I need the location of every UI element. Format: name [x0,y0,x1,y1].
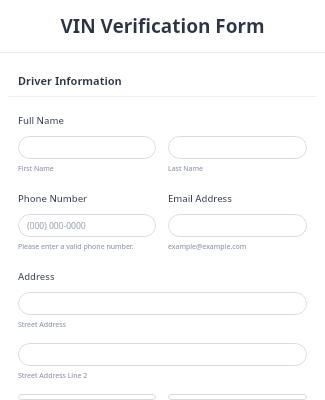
staticText: Driver Information [18,73,122,88]
button[interactable] [18,292,307,315]
staticText: example@example.com [168,242,247,252]
button[interactable]: (000) 000-0000 [18,214,156,237]
staticText: Please enter a valid phone number. [18,242,134,252]
staticText: First Name [18,164,54,174]
button[interactable] [18,343,307,366]
button[interactable] [168,394,307,400]
staticText: Street Address [18,320,66,330]
button[interactable] [168,136,307,159]
staticText: Full Name [18,114,64,127]
button[interactable] [168,214,307,237]
staticText: Email Address [168,192,232,205]
staticText: Address [18,270,55,283]
staticText: Phone Number [18,192,88,205]
staticText: (000) 000-0000 [27,220,86,232]
staticText: VIN Verification Form [60,13,265,39]
button[interactable] [18,136,156,159]
staticText: Street Address Line 2 [18,371,88,381]
staticText: Last Name [168,164,204,174]
button[interactable] [18,394,156,400]
